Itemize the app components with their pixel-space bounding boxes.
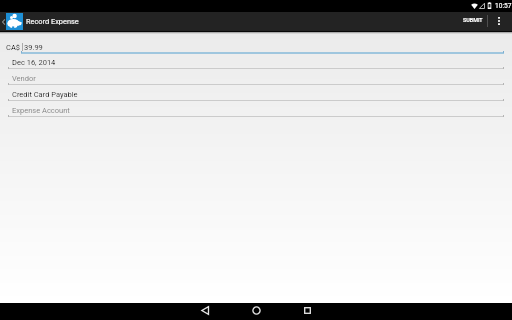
button[interactable]: Credit Card Payable — [0, 86, 512, 102]
button[interactable]: Vendor — [0, 70, 512, 86]
staticText: 39.99 — [24, 43, 43, 52]
staticText: 10:57 — [495, 2, 512, 10]
button[interactable]: Home — [238, 303, 274, 320]
staticText: Credit Card Payable — [12, 90, 78, 99]
button[interactable]: Expense Account — [0, 102, 512, 118]
button[interactable] — [0, 32, 512, 53]
button[interactable]: Recent apps — [289, 303, 325, 320]
button[interactable]: Navigate up — [0, 12, 24, 32]
staticText: Vendor — [12, 74, 36, 83]
button[interactable]: More options — [488, 12, 512, 32]
staticText: Dec 16, 2014 — [12, 58, 56, 67]
staticText: Expense Account — [12, 106, 70, 115]
staticText: CA$ — [6, 43, 20, 52]
button[interactable]: SUBMIT — [463, 12, 483, 32]
staticText: Record Expense — [26, 17, 79, 26]
button[interactable]: Dec 16, 2014 — [0, 54, 512, 70]
button[interactable]: Back — [187, 303, 223, 320]
staticText: SUBMIT — [463, 17, 483, 23]
